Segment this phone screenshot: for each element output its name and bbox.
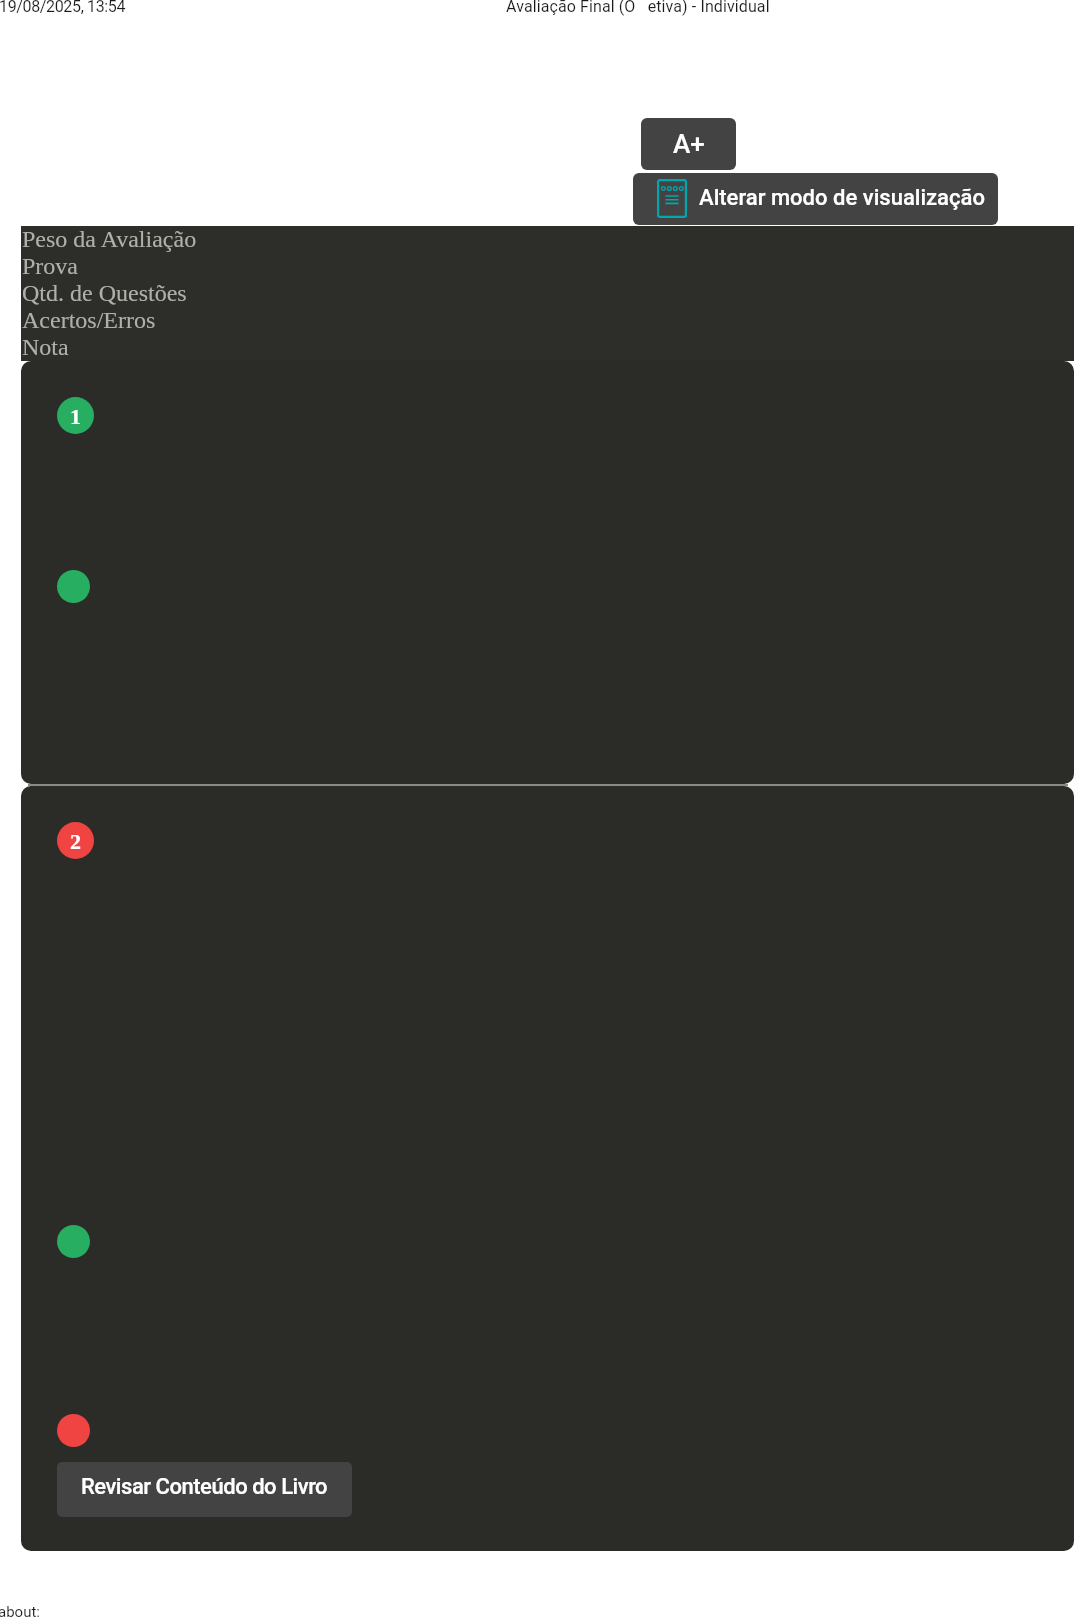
button[interactable]: 1 <box>21 361 1074 784</box>
staticText: Qtd. de Questões <box>22 280 187 307</box>
staticText: A+ <box>673 129 705 159</box>
staticText: Revisar Conteúdo do Livro <box>81 1474 328 1500</box>
button[interactable]: Aumentar tamanho da fonte <box>641 118 736 170</box>
staticText: 19/08/2025, 13:54 <box>0 0 126 16</box>
button[interactable]: Revisar Conteúdo do Livro <box>57 1462 352 1517</box>
staticText: Acertos/Erros <box>22 307 156 334</box>
staticText: 1 <box>70 404 81 428</box>
staticText: 2 <box>70 829 81 853</box>
staticText: Prova <box>22 253 78 280</box>
button[interactable]: 2 <box>21 786 1074 1551</box>
staticText: Nota <box>22 334 69 361</box>
button[interactable]: Alterar modo de visualização <box>633 173 998 225</box>
staticText: Peso da Avaliação <box>22 226 197 253</box>
staticText: Avaliação Final (O etiva) - Individual <box>506 0 770 16</box>
staticText: about: <box>0 1603 40 1620</box>
other: Alterar modo de visualização <box>657 179 687 218</box>
staticText: Alterar modo de visualização <box>699 185 985 211</box>
